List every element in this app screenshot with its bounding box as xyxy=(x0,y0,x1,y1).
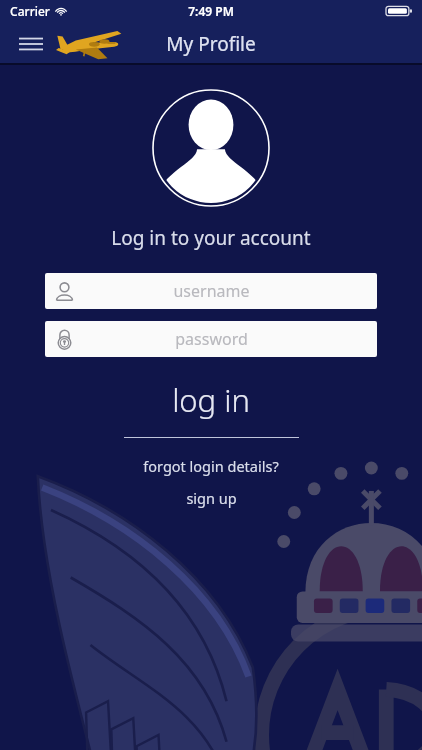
staticText: 7:49 PM xyxy=(188,3,234,19)
button[interactable]: password xyxy=(45,321,377,357)
staticText: password xyxy=(175,328,248,350)
button[interactable]: username xyxy=(45,273,377,309)
staticText: log in xyxy=(172,379,250,421)
button[interactable]: log in xyxy=(0,379,422,421)
staticText: sign up xyxy=(186,488,237,508)
staticText: Log in to your account xyxy=(0,225,422,251)
staticText: Carrier xyxy=(10,3,50,19)
staticText: My Profile xyxy=(166,31,256,57)
button[interactable]: forgot login details? xyxy=(0,456,422,476)
staticText: forgot login details? xyxy=(143,456,279,476)
button[interactable]: Menu xyxy=(12,25,50,63)
button[interactable]: Logo xyxy=(56,27,122,61)
button[interactable]: sign up xyxy=(0,488,422,508)
staticText: username xyxy=(173,280,250,302)
